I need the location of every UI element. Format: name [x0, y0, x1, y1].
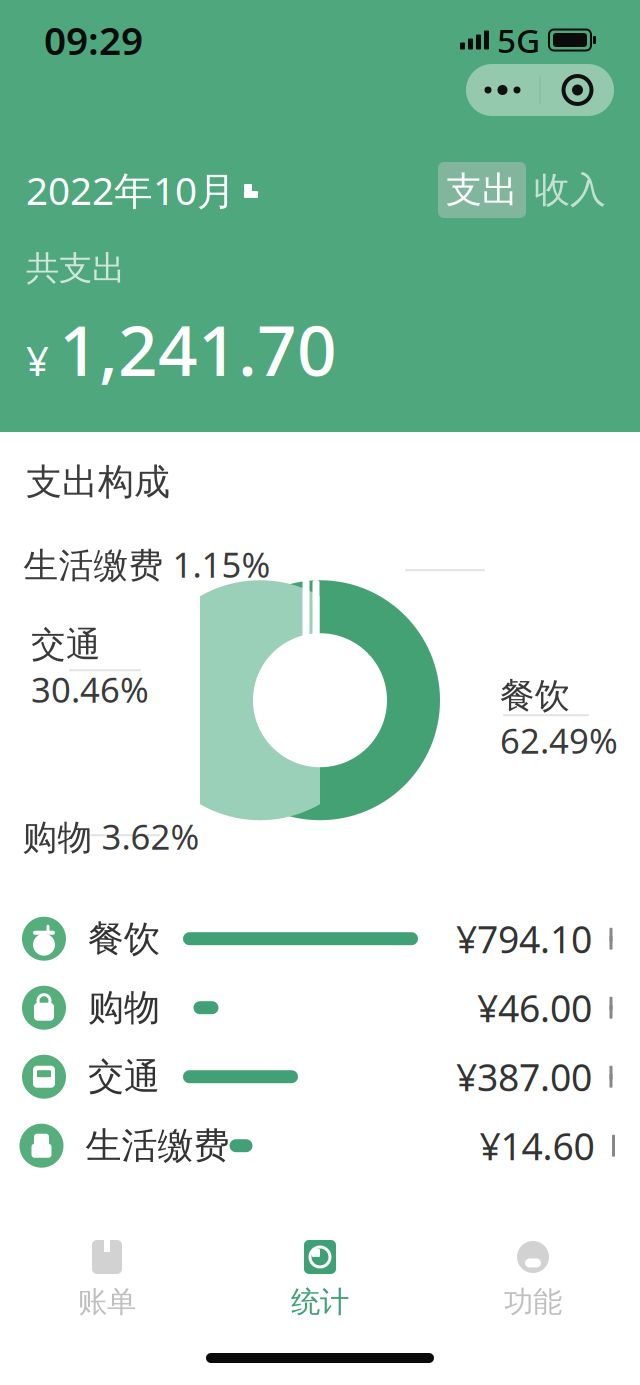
button[interactable]: 统计: [213, 1225, 426, 1335]
staticText: ¥46.00: [477, 983, 592, 1032]
button[interactable]: 购物: [0, 973, 640, 1042]
staticText: 生活缴费: [85, 1124, 229, 1168]
staticText: ¥14.60: [479, 1121, 594, 1170]
staticText: 2022年10月: [26, 164, 236, 216]
button[interactable]: 功能: [426, 1225, 639, 1335]
staticText: 交通: [88, 1055, 160, 1099]
staticText: 交通 30.46%: [31, 620, 149, 712]
staticText: 统计: [291, 1284, 349, 1320]
staticText: 功能: [504, 1284, 562, 1320]
staticText: 5G: [497, 18, 540, 62]
staticText: 1,241.70: [59, 303, 337, 395]
staticText: 购物 3.62%: [22, 813, 199, 859]
button[interactable]: 账单: [0, 1225, 213, 1335]
button[interactable]: 关闭: [540, 64, 614, 116]
staticText: ¥794.10: [456, 914, 592, 963]
staticText: ¥387.00: [456, 1052, 592, 1101]
button[interactable]: 生活缴费: [0, 1111, 640, 1180]
staticText: 收入: [534, 168, 606, 212]
button[interactable]: 支出: [438, 162, 526, 218]
staticText: ¥: [26, 334, 49, 387]
staticText: 支出构成: [26, 460, 170, 504]
button[interactable]: 更多: [465, 64, 539, 116]
staticText: 共支出: [26, 248, 125, 289]
staticText: 餐饮 62.49%: [500, 671, 618, 763]
staticText: 09:29: [44, 14, 143, 66]
button[interactable]: 餐饮: [0, 904, 640, 973]
staticText: 购物: [88, 986, 160, 1030]
staticText: 支出: [446, 168, 518, 212]
button[interactable]: 交通: [0, 1042, 640, 1111]
staticText: 账单: [78, 1284, 136, 1320]
button[interactable]: 收入: [526, 162, 614, 218]
staticText: 餐饮: [88, 917, 160, 961]
staticText: 生活缴费 1.15%: [23, 541, 270, 587]
button[interactable]: 2022年10月: [26, 164, 259, 216]
